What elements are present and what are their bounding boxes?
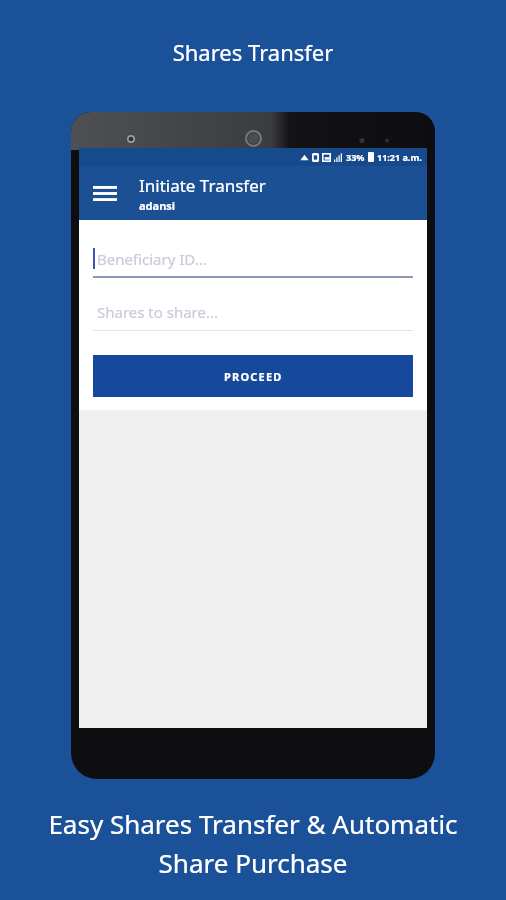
staticText: Shares to share... <box>97 302 219 322</box>
button[interactable]: PROCEED <box>93 355 413 397</box>
staticText: Initiate Transfer <box>139 174 266 197</box>
button[interactable]: Shares to share... <box>93 294 413 330</box>
staticText: PROCEED <box>224 369 283 384</box>
staticText: adansi <box>139 198 176 213</box>
staticText: Beneficiary ID... <box>97 249 207 269</box>
staticText: 11:21 a.m. <box>377 151 422 163</box>
button[interactable]: Beneficiary ID... <box>93 240 413 276</box>
button[interactable]: Open navigation menu <box>84 172 126 214</box>
staticText: 33% <box>346 151 365 163</box>
staticText: Share Purchase <box>8 845 498 880</box>
staticText: Easy Shares Transfer & Automatic <box>8 806 498 841</box>
staticText: Shares Transfer <box>0 37 506 67</box>
